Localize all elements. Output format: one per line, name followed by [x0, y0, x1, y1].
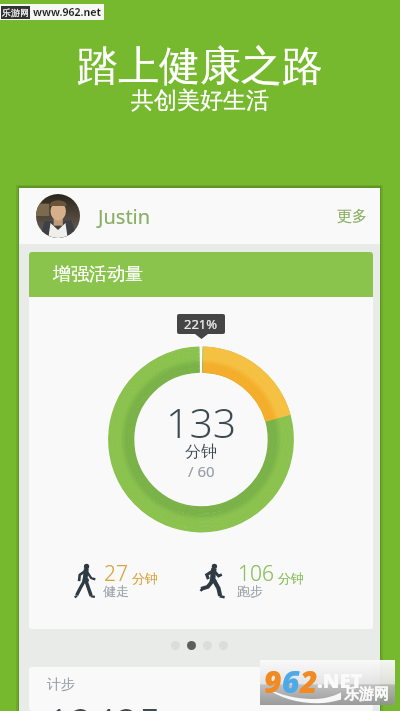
staticText: 27	[104, 559, 128, 588]
button[interactable]	[171, 641, 228, 650]
button[interactable]: 跑步	[200, 538, 304, 583]
staticText: / 60	[188, 461, 215, 481]
staticText: 健走	[103, 583, 129, 599]
staticText: 共创美好生活	[131, 86, 269, 115]
button[interactable]: 更多	[329, 199, 375, 234]
button[interactable]: 健走	[74, 538, 158, 583]
staticText: 增强活动量	[53, 263, 143, 286]
staticText: 分钟	[132, 570, 158, 586]
staticText: 跑步	[237, 583, 263, 599]
staticText: 更多	[337, 207, 367, 226]
staticText: .NET	[317, 667, 363, 694]
button[interactable]: 头像	[19, 188, 380, 244]
button[interactable]: 计步	[29, 667, 373, 711]
button[interactable]: 头像	[36, 194, 80, 238]
other: 健走	[74, 563, 96, 598]
staticText: 6	[282, 661, 300, 702]
staticText: 分钟	[278, 570, 304, 586]
staticText: 踏上健康之路	[77, 41, 323, 93]
staticText: Justin	[98, 203, 151, 230]
staticText: 106	[238, 559, 274, 588]
staticText: 12425	[47, 695, 162, 711]
staticText: 2	[300, 661, 318, 702]
staticText: 乐游网	[344, 685, 389, 704]
other: 跑步	[200, 563, 228, 598]
staticText: 133	[166, 394, 237, 450]
staticText: 分钟	[185, 442, 217, 462]
staticText: www.962.net	[33, 5, 102, 19]
staticText: 乐游网	[2, 7, 29, 18]
staticText: 221%	[184, 315, 218, 333]
staticText: 计步	[47, 676, 75, 694]
staticText: 9	[264, 661, 282, 702]
